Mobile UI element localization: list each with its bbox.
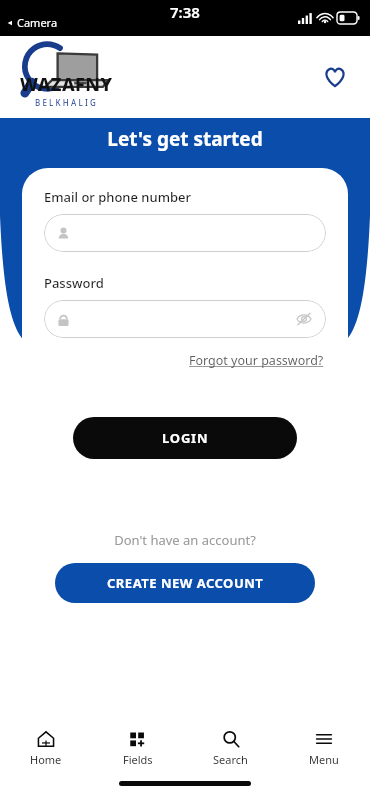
staticText: Fields <box>123 752 153 767</box>
button[interactable]: Fields <box>92 722 184 774</box>
staticText: Menu <box>309 752 339 767</box>
button[interactable]: Show password <box>44 300 326 338</box>
staticText: Home <box>30 752 62 767</box>
staticText: BELKHALIG <box>35 97 98 108</box>
staticText: Email or phone number <box>44 188 191 206</box>
staticText: Camera <box>17 15 58 30</box>
staticText: 7:38 <box>170 2 200 22</box>
staticText: Don't have an account? <box>0 531 370 549</box>
button[interactable]: Menu <box>277 722 370 774</box>
staticText: Forgot your password? <box>189 352 324 369</box>
staticText: LOGIN <box>162 429 209 447</box>
button[interactable]: LOGIN <box>73 417 297 459</box>
button[interactable]: Home <box>0 722 92 774</box>
button[interactable]: Show password <box>295 310 313 328</box>
button[interactable] <box>44 214 326 252</box>
staticText: Search <box>213 752 248 767</box>
staticText: Password <box>44 274 104 292</box>
button[interactable]: CREATE NEW ACCOUNT <box>55 563 315 603</box>
staticText: WAZAFNY <box>20 72 113 97</box>
button[interactable]: Search <box>184 722 277 774</box>
staticText: CREATE NEW ACCOUNT <box>107 574 264 592</box>
button[interactable]: Forgot your password? <box>187 350 326 371</box>
button[interactable]: Favorites <box>314 56 356 98</box>
staticText: Let's get started <box>0 126 370 152</box>
